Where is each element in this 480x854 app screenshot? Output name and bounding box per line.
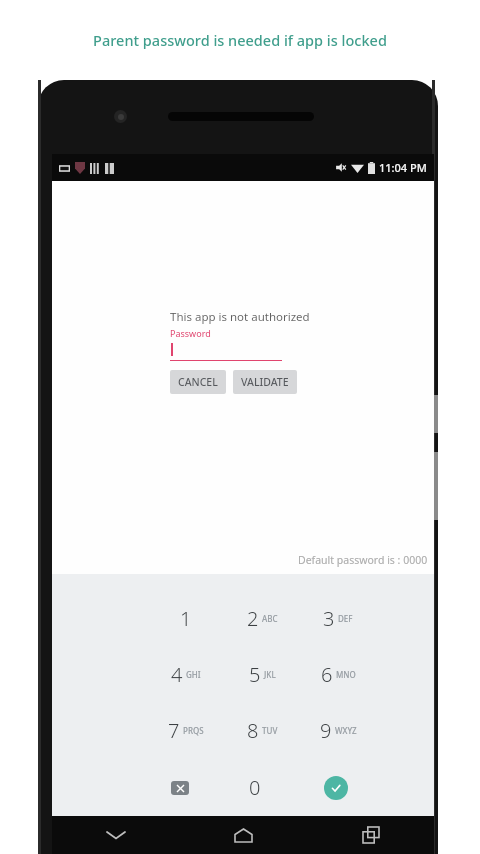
staticText: 7 xyxy=(168,717,180,744)
staticText: GHI xyxy=(186,669,201,680)
button[interactable]: 4 xyxy=(148,646,224,702)
button[interactable]: 3 xyxy=(300,590,376,646)
staticText: This app is not authorized xyxy=(170,309,310,325)
button[interactable]: 9 xyxy=(300,702,376,759)
staticText: 1 xyxy=(180,605,192,632)
staticText: CANCEL xyxy=(178,375,218,389)
button[interactable]: 2 xyxy=(224,590,300,646)
button[interactable]: Validate xyxy=(300,759,376,816)
staticText: JKL xyxy=(264,669,276,680)
staticText: 11:04 PM xyxy=(379,160,427,175)
staticText: MNO xyxy=(336,669,356,680)
staticText: 8 xyxy=(247,717,259,744)
staticText: PRQS xyxy=(183,725,204,736)
button[interactable]: 1 xyxy=(148,590,224,646)
staticText: VALIDATE xyxy=(241,375,289,389)
button[interactable]: CANCEL xyxy=(170,370,226,394)
staticText: DEF xyxy=(338,613,353,624)
button[interactable]: Recents xyxy=(307,816,434,854)
button[interactable]: Backspace xyxy=(148,759,224,816)
button[interactable]: Back xyxy=(52,816,180,854)
staticText: 2 xyxy=(247,605,259,632)
button[interactable]: VALIDATE xyxy=(233,370,297,394)
staticText: ABC xyxy=(262,613,278,624)
button[interactable]: 6 xyxy=(300,646,376,702)
button[interactable]: 0 xyxy=(224,759,300,816)
staticText: TUV xyxy=(262,725,278,736)
staticText: 0 xyxy=(249,774,261,801)
button[interactable]: 5 xyxy=(224,646,300,702)
staticText: Parent password is needed if app is lock… xyxy=(93,30,387,50)
button[interactable]: Home xyxy=(180,816,307,854)
button[interactable]: 8 xyxy=(224,702,300,759)
staticText: 9 xyxy=(320,717,332,744)
staticText: WXYZ xyxy=(335,725,357,736)
staticText: 3 xyxy=(323,605,335,632)
staticText: Default password is : 0000 xyxy=(298,553,428,567)
button[interactable]: 7 xyxy=(148,702,224,759)
staticText: 5 xyxy=(249,661,261,688)
staticText: Password xyxy=(170,327,211,339)
staticText: 4 xyxy=(171,661,183,688)
staticText: 6 xyxy=(321,661,333,688)
